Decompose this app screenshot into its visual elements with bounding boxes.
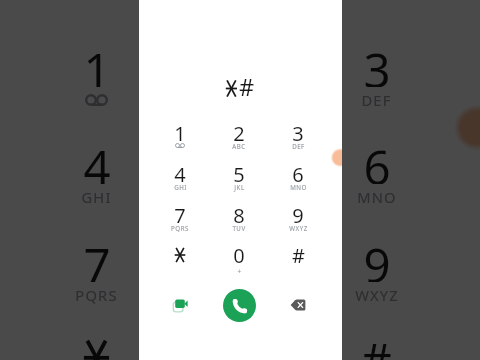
staticText: 8 bbox=[223, 232, 251, 282]
button[interactable] bbox=[154, 235, 206, 275]
staticText: GHI bbox=[174, 183, 187, 191]
staticText: + bbox=[237, 267, 242, 275]
button[interactable]: 2 bbox=[175, 22, 298, 117]
staticText: DEF bbox=[292, 142, 305, 150]
staticText: TUV bbox=[221, 285, 253, 305]
staticText: # bbox=[361, 327, 392, 360]
button[interactable]: 3 bbox=[315, 22, 438, 117]
button[interactable]: Call bbox=[223, 289, 256, 322]
staticText: 5 bbox=[233, 161, 245, 182]
button[interactable]: Backspace bbox=[284, 291, 312, 319]
button[interactable]: 1 bbox=[154, 113, 206, 153]
button[interactable]: 9 bbox=[315, 217, 438, 312]
button[interactable]: 7 bbox=[35, 217, 158, 312]
staticText: PQRS bbox=[75, 285, 118, 305]
staticText: 9 bbox=[363, 232, 391, 282]
staticText: 8 bbox=[233, 202, 245, 223]
button[interactable]: 6 bbox=[315, 119, 438, 214]
button[interactable]: 5 bbox=[175, 119, 298, 214]
staticText: DEF bbox=[361, 90, 392, 110]
staticText: JKL bbox=[224, 187, 249, 207]
staticText: JKL bbox=[234, 183, 245, 191]
button[interactable]: 6 bbox=[272, 154, 324, 194]
button[interactable]: 3 bbox=[272, 113, 324, 153]
staticText: 4 bbox=[174, 161, 186, 182]
button[interactable]: 4 bbox=[154, 154, 206, 194]
staticText: 1 bbox=[83, 37, 111, 87]
staticText: 6 bbox=[363, 134, 391, 184]
staticText: 9 bbox=[292, 202, 304, 223]
staticText: 6 bbox=[292, 161, 304, 182]
button[interactable]: 9 bbox=[272, 195, 324, 235]
button[interactable]: Video call bbox=[166, 290, 194, 318]
staticText: ABC bbox=[221, 90, 253, 110]
staticText: WXYZ bbox=[355, 285, 399, 305]
staticText: GHI bbox=[81, 187, 112, 207]
button[interactable]: 8 bbox=[175, 217, 298, 312]
staticText: 3 bbox=[292, 120, 304, 141]
staticText: ABC bbox=[232, 142, 246, 150]
button[interactable]: 1 bbox=[35, 22, 158, 117]
staticText: 2 bbox=[233, 120, 245, 141]
button[interactable] bbox=[35, 312, 158, 360]
staticText: 3 bbox=[363, 37, 391, 87]
staticText: MNO bbox=[357, 187, 397, 207]
staticText: TUV bbox=[232, 224, 246, 232]
staticText: 7 bbox=[174, 202, 186, 223]
button[interactable]: 0 bbox=[175, 312, 298, 360]
staticText: PQRS bbox=[171, 224, 189, 232]
button[interactable]: 5 bbox=[213, 154, 265, 194]
staticText: 0 bbox=[233, 242, 245, 263]
button[interactable]: # bbox=[315, 312, 438, 360]
staticText: WXYZ bbox=[289, 224, 308, 232]
staticText: 1 bbox=[174, 120, 186, 141]
staticText: # bbox=[292, 242, 305, 263]
staticText: # bbox=[239, 71, 255, 103]
button[interactable]: 8 bbox=[213, 195, 265, 235]
staticText: 5 bbox=[223, 134, 251, 184]
staticText: MNO bbox=[290, 183, 307, 191]
staticText: 4 bbox=[83, 134, 111, 184]
button[interactable]: 0 bbox=[213, 235, 265, 275]
staticText: 7 bbox=[83, 232, 111, 282]
button[interactable]: 4 bbox=[35, 119, 158, 214]
staticText: 2 bbox=[223, 37, 251, 87]
button[interactable]: 7 bbox=[154, 195, 206, 235]
button[interactable]: 2 bbox=[213, 113, 265, 153]
button[interactable]: # bbox=[272, 235, 324, 275]
